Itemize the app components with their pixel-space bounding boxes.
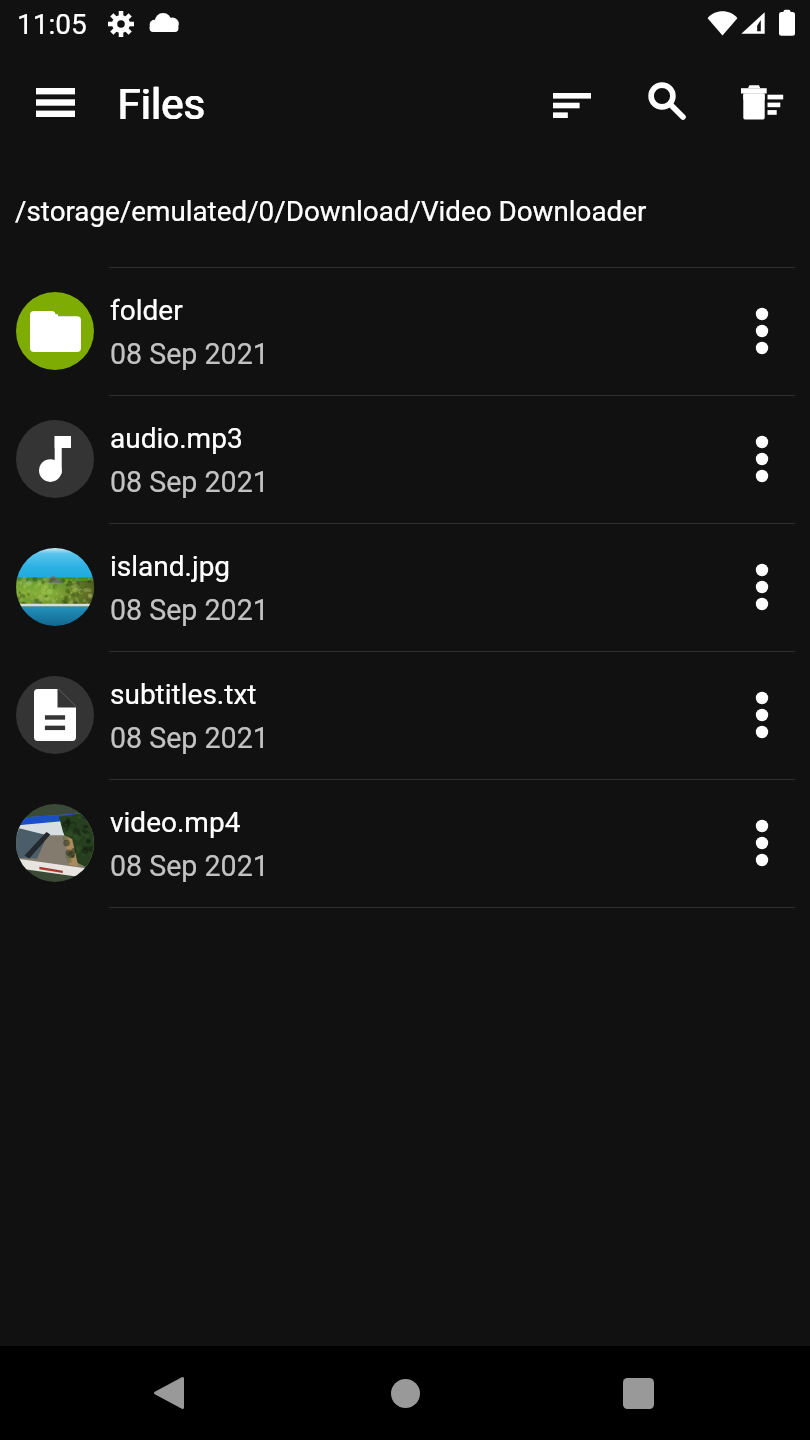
staticText: subtitles.txt [110, 678, 257, 711]
button[interactable]: Search [618, 58, 706, 146]
staticText: 11:05 [17, 8, 87, 41]
button[interactable]: island.jpg [0, 524, 810, 651]
staticText: 08 Sep 2021 [110, 337, 269, 371]
button[interactable]: Open navigation drawer [11, 58, 99, 146]
button[interactable]: Sort [528, 61, 616, 149]
staticText: 08 Sep 2021 [110, 593, 269, 627]
button[interactable]: Recent apps [594, 1346, 682, 1440]
staticText: Files [117, 80, 205, 129]
button[interactable]: More options [718, 415, 806, 503]
button[interactable]: video.mp4 [0, 780, 810, 907]
button[interactable]: folder [0, 268, 810, 395]
staticText: folder [110, 294, 183, 327]
staticText: video.mp4 [110, 806, 241, 839]
button[interactable]: More options [718, 671, 806, 759]
staticText: 08 Sep 2021 [110, 465, 269, 499]
button[interactable]: More options [718, 799, 806, 887]
button[interactable]: audio.mp3 [0, 396, 810, 523]
button[interactable]: subtitles.txt [0, 652, 810, 779]
button[interactable]: More options [718, 287, 806, 375]
staticText: /storage/emulated/0/Download/Video Downl… [15, 195, 647, 228]
staticText: Files [118, 80, 206, 129]
staticText: 08 Sep 2021 [110, 849, 269, 883]
staticText: audio.mp3 [110, 422, 243, 455]
staticText: island.jpg [110, 550, 231, 583]
button[interactable]: More options [718, 543, 806, 631]
button[interactable]: Back [125, 1346, 213, 1440]
button[interactable]: Delete [718, 59, 806, 147]
staticText: 08 Sep 2021 [110, 721, 269, 755]
button[interactable]: Home [361, 1346, 449, 1440]
